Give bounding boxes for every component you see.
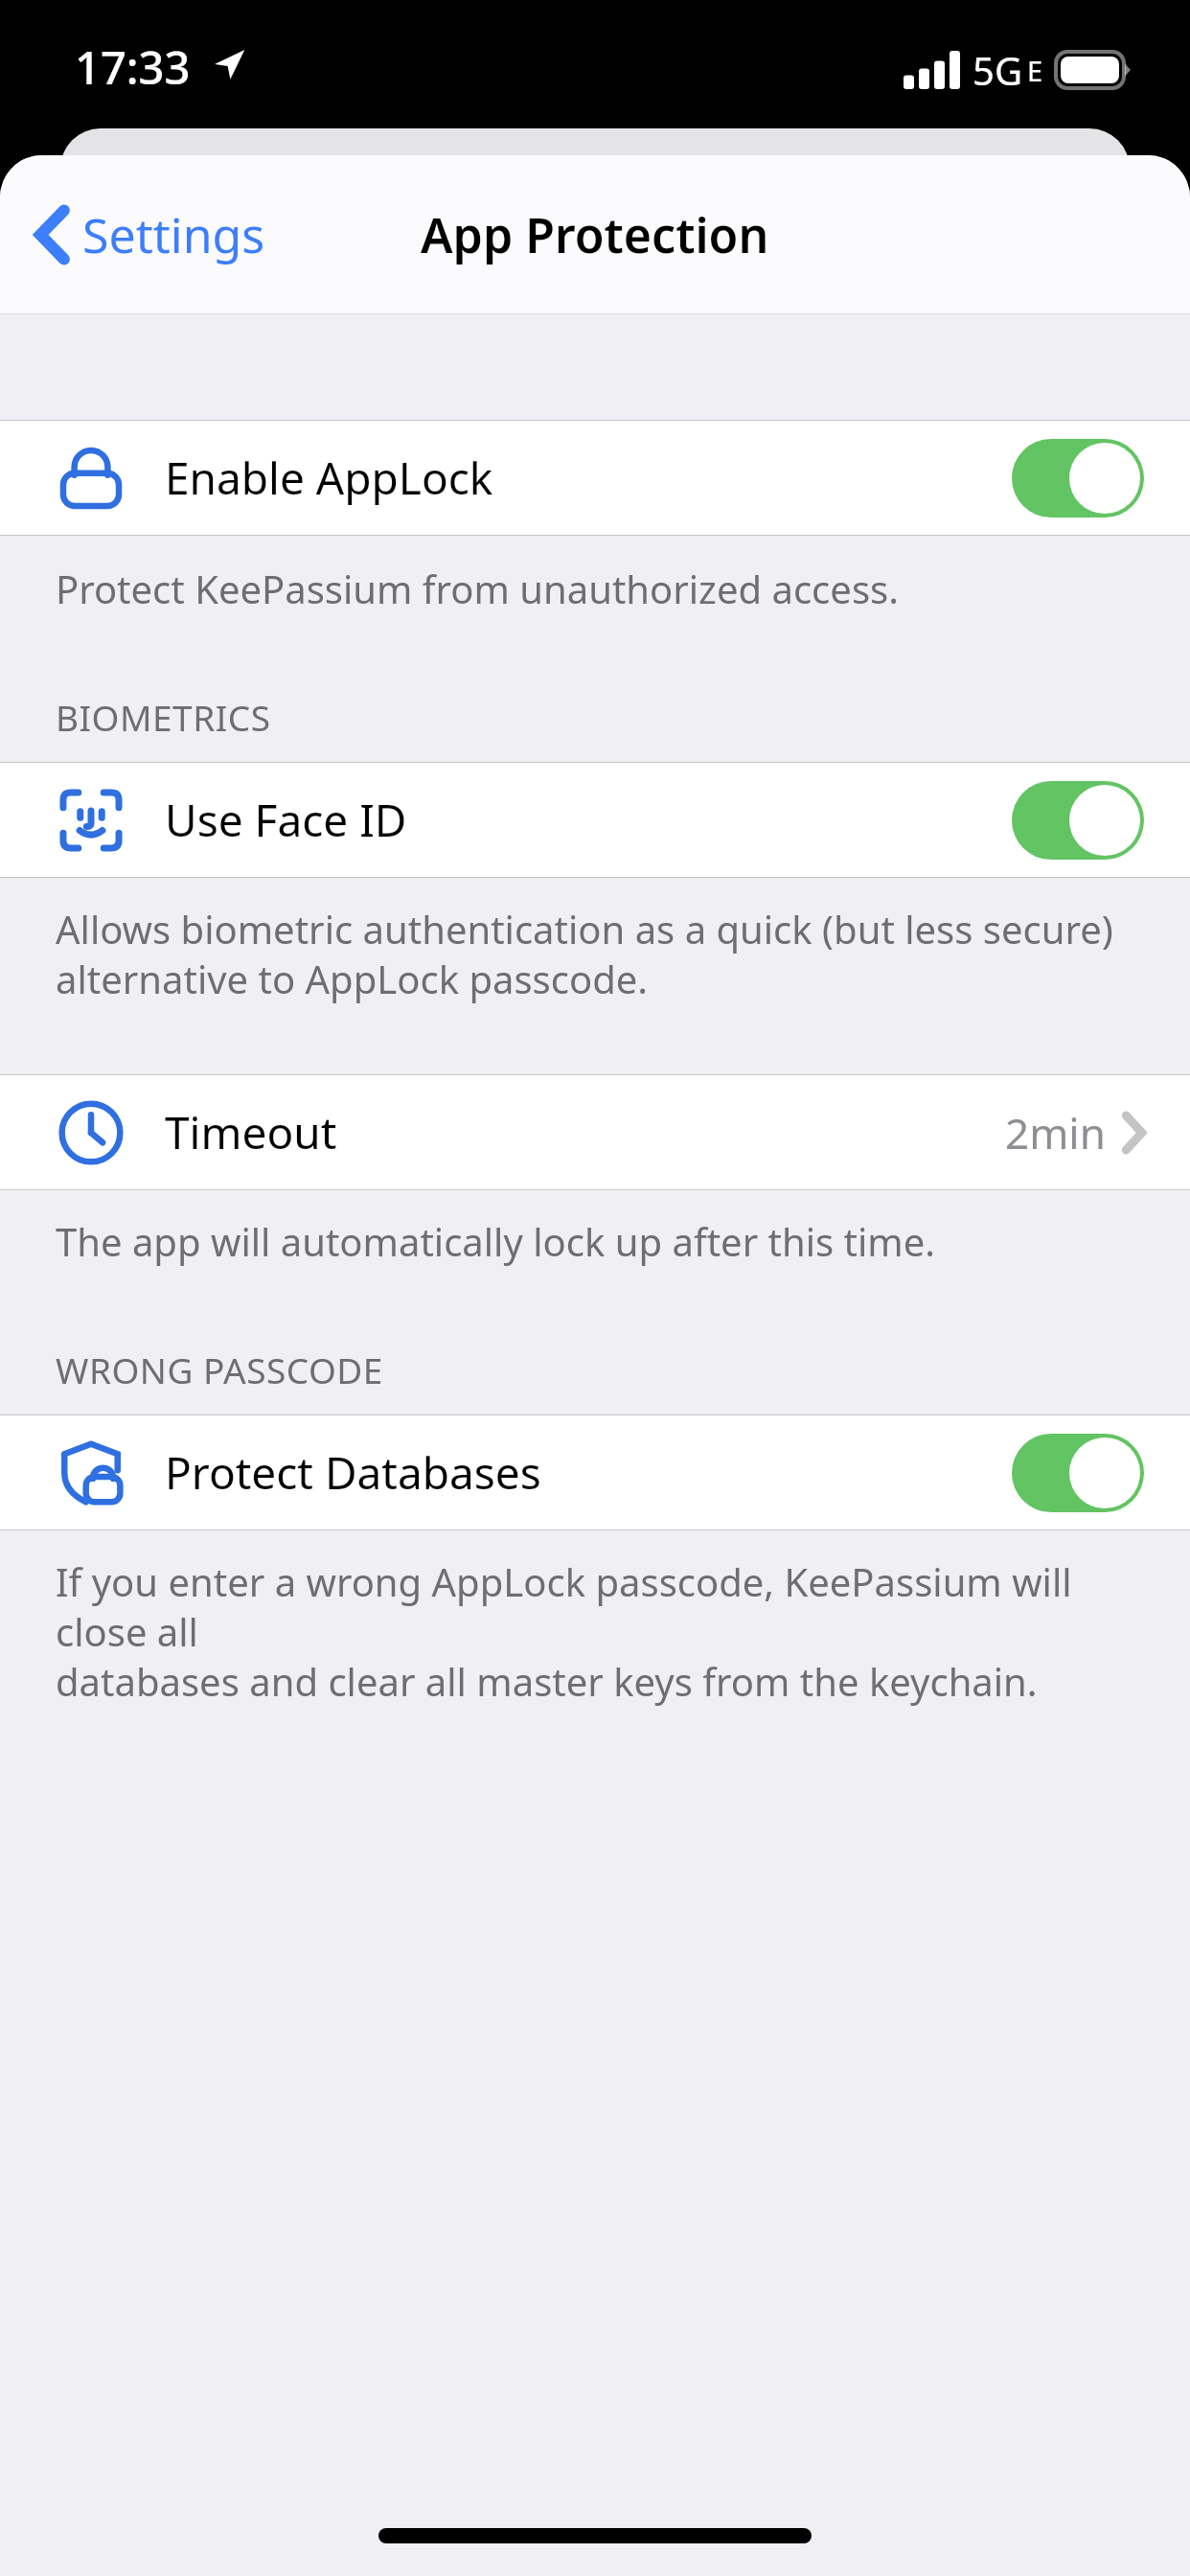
staticText: 5G xyxy=(973,44,1022,96)
staticText: 17:33 xyxy=(75,36,191,98)
staticText: Allows biometric authentication as a qui… xyxy=(56,903,1113,1005)
button[interactable]: Toggle xyxy=(1012,781,1144,860)
button[interactable]: Protect Databases xyxy=(0,1415,1190,1529)
staticText: App Protection xyxy=(421,202,769,267)
staticText: WRONG PASSCODE xyxy=(56,1345,383,1393)
staticText: Timeout xyxy=(165,1102,337,1162)
staticText: Use Face ID xyxy=(165,790,407,850)
staticText: BIOMETRICS xyxy=(56,693,271,741)
staticText: Protect KeePassium from unauthorized acc… xyxy=(56,563,899,614)
button[interactable]: Enable AppLock xyxy=(0,421,1190,535)
button[interactable]: Timeout xyxy=(0,1075,1190,1189)
button[interactable]: Toggle xyxy=(1012,439,1144,517)
staticText: Enable AppLock xyxy=(165,448,493,508)
button[interactable]: Use Face ID xyxy=(0,763,1190,877)
staticText: Protect Databases xyxy=(165,1442,541,1503)
button[interactable]: Toggle xyxy=(1012,1434,1144,1512)
staticText: 2min xyxy=(1005,1104,1106,1161)
staticText: If you enter a wrong AppLock passcode, K… xyxy=(56,1555,1152,1708)
staticText: The app will automatically lock up after… xyxy=(56,1215,936,1267)
staticText: Settings xyxy=(82,202,265,267)
button[interactable]: Settings xyxy=(29,189,273,281)
staticText: E xyxy=(1027,52,1043,89)
